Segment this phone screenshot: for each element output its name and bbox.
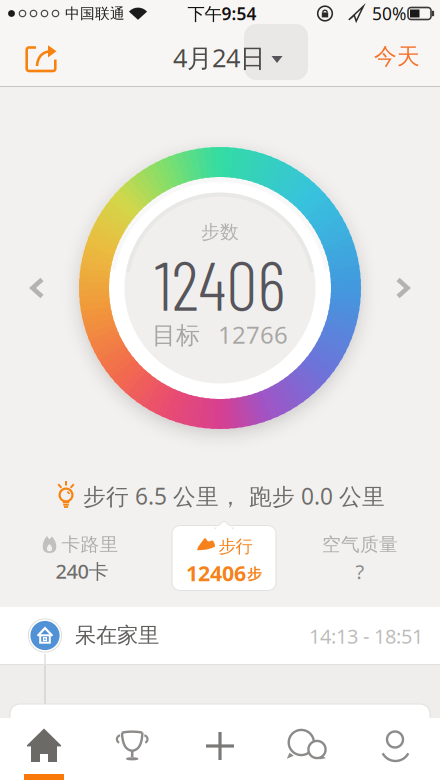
button[interactable]: Next day xyxy=(394,277,410,299)
staticText: 中国联通 xyxy=(65,4,125,22)
button[interactable]: Previous day xyxy=(29,277,45,299)
button[interactable]: 4月24日 xyxy=(173,41,283,74)
staticText: 4月24日 xyxy=(173,41,265,74)
staticText: 步行 6.5 公里， 跑步 0.0 公里 xyxy=(83,481,385,511)
button[interactable]: Messages xyxy=(264,718,352,780)
button[interactable]: Home xyxy=(0,718,88,780)
button[interactable]: Share xyxy=(23,42,59,74)
staticText: 下午9:54 xyxy=(187,2,256,25)
button[interactable]: Add xyxy=(176,718,264,780)
staticText: 今天 xyxy=(374,43,420,70)
staticText: 50% xyxy=(372,2,406,25)
staticText: 步 xyxy=(247,565,262,583)
staticText: ? xyxy=(355,558,364,585)
button[interactable]: Profile xyxy=(352,718,440,780)
staticText: 步数 xyxy=(201,220,239,243)
button[interactable]: Achievements xyxy=(88,718,176,780)
staticText: 卡路里 xyxy=(61,533,118,556)
staticText: 步行 xyxy=(218,536,252,557)
staticText: 240卡 xyxy=(55,558,108,584)
staticText: 呆在家里 xyxy=(75,622,159,649)
staticText: 14:13 - 18:51 xyxy=(309,623,423,649)
staticText: 12406 xyxy=(186,559,246,587)
staticText: 12406 xyxy=(154,241,285,325)
button[interactable]: 步行 xyxy=(169,520,279,594)
staticText: 空气质量 xyxy=(322,533,398,556)
staticText: 目标 12766 xyxy=(152,319,288,350)
button[interactable]: 今天 xyxy=(374,43,420,70)
button[interactable]: 呆在家里 xyxy=(0,607,440,665)
